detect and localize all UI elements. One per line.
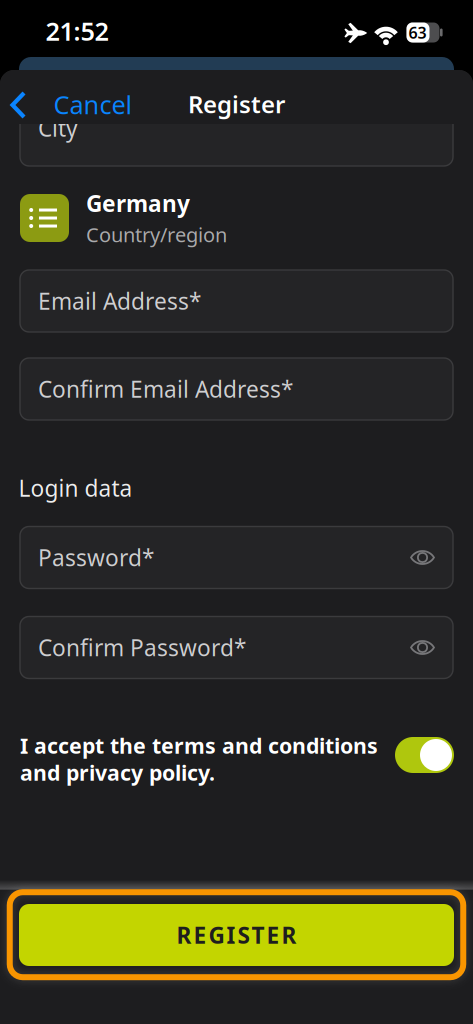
staticText: City — [38, 113, 78, 143]
staticText: Confirm Password* — [38, 632, 246, 662]
button[interactable]: Show password — [401, 541, 443, 573]
button[interactable]: Back — [5, 87, 29, 123]
staticText: R E G I S T E R — [176, 920, 296, 950]
staticText: Email Address* — [38, 286, 201, 316]
button[interactable]: I accept the terms and conditions and pr… — [395, 737, 454, 773]
staticText: Login data — [18, 473, 132, 503]
staticText: Password* — [38, 542, 154, 572]
button[interactable]: City — [20, 104, 453, 166]
button[interactable]: Email Address* — [20, 270, 453, 332]
staticText: Country/region — [86, 221, 227, 248]
staticText: 21:52 — [45, 14, 108, 48]
staticText: Cancel — [53, 88, 132, 121]
button[interactable]: Germany — [20, 188, 453, 248]
button[interactable]: Cancel — [53, 88, 132, 121]
staticText: Confirm Email Address* — [38, 374, 293, 404]
button[interactable]: Show password — [401, 631, 443, 663]
button[interactable]: Confirm Password* — [20, 616, 453, 678]
button[interactable]: R E G I S T E R — [19, 904, 454, 966]
staticText: Germany — [86, 188, 190, 218]
button[interactable]: Confirm Email Address* — [20, 358, 453, 420]
staticText: Register — [188, 88, 285, 120]
button[interactable]: Password* — [20, 526, 453, 588]
staticText: and privacy policy. — [20, 758, 215, 787]
staticText: 63 — [408, 22, 426, 43]
staticText: I accept the terms and conditions — [20, 731, 378, 760]
